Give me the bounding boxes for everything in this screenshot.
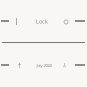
button[interactable]: Scroll down xyxy=(62,63,67,68)
button[interactable]: Lock xyxy=(36,18,48,25)
staticText: July 2024 xyxy=(36,63,51,68)
button[interactable]: Status xyxy=(64,20,68,24)
button[interactable]: July 2024 xyxy=(36,63,51,68)
staticText: Lock xyxy=(36,18,48,25)
button[interactable]: Scroll up xyxy=(17,63,22,68)
